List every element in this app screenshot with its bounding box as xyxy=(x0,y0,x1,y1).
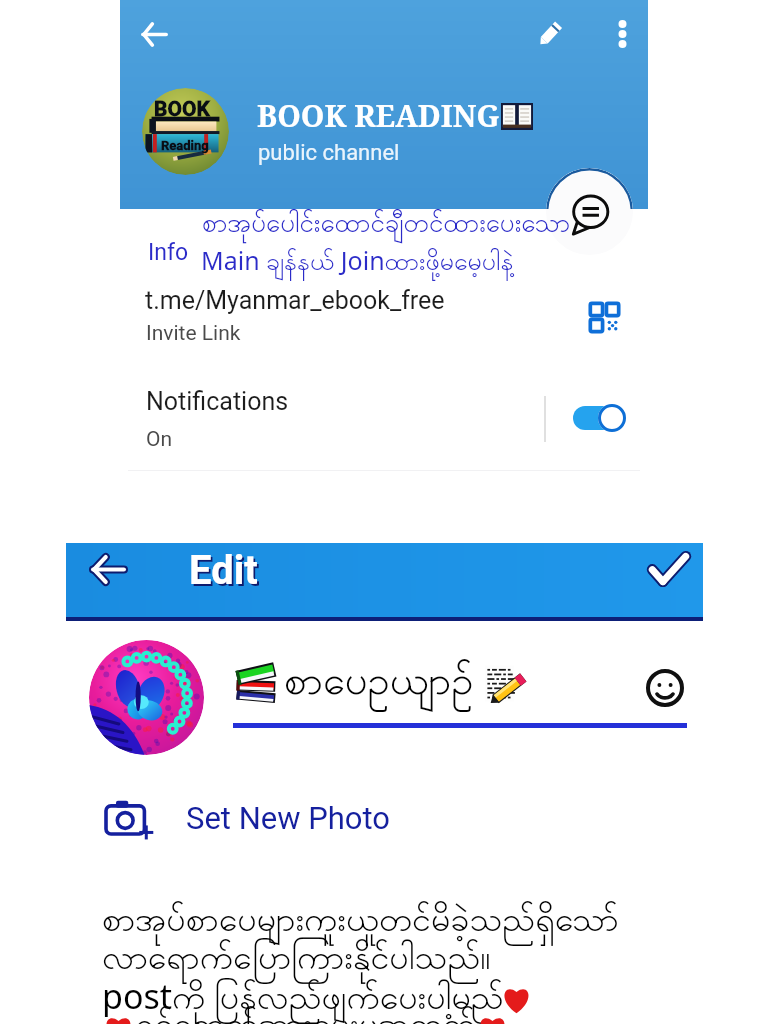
button[interactable]: Emoji xyxy=(643,666,687,710)
staticText: Edit xyxy=(191,549,260,596)
button[interactable]: Set New Photo xyxy=(104,796,434,840)
staticText: Reading xyxy=(161,138,209,153)
button[interactable]: Message xyxy=(546,168,633,255)
staticText: စာအုပ်ပေါင်းထောင်ချီတင်ထားပေးသော xyxy=(202,206,571,244)
button[interactable]: Back xyxy=(134,14,174,54)
staticText: BOOK READING xyxy=(257,95,500,136)
staticText: public channel xyxy=(258,140,400,166)
staticText: စာအုပ်စာပေများကူးယူတင်မိခဲ့သည်ရှိသော် xyxy=(102,897,619,947)
staticText: Info xyxy=(148,239,189,266)
button[interactable]: Done xyxy=(646,546,692,592)
button[interactable]: Edit xyxy=(530,14,570,54)
staticText: Main ချန်နယ် Joinထားဖို့မမေ့ပါနဲ့ xyxy=(201,243,514,282)
staticText: On xyxy=(146,427,173,452)
staticText: Set New Photo xyxy=(186,800,391,836)
staticText: t.me/Myanmar_ebook_free xyxy=(145,286,445,315)
button[interactable]: Back xyxy=(85,546,131,592)
staticText: ဝင်ရောက်အားပေးမှုအတွက် xyxy=(135,1002,476,1024)
button[interactable]: Notifications toggle xyxy=(568,396,632,440)
staticText: postကို ပြန်လည်ဖျက်ပေးပါ့မည် xyxy=(102,973,504,1024)
button[interactable]: QR code xyxy=(584,297,624,337)
staticText: Invite Link xyxy=(146,321,241,346)
staticText: စာပေဥယျာဉ် xyxy=(284,655,474,714)
button[interactable]: More options xyxy=(602,14,642,54)
staticText: BOOK xyxy=(154,97,210,122)
staticText: Notifications xyxy=(146,387,289,416)
staticText: လာရောက်ပြောကြားနိုင်ပါသည်။ xyxy=(102,935,491,985)
staticText: Edit xyxy=(189,547,258,594)
